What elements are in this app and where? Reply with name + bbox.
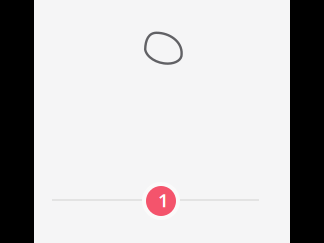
button[interactable]: Stroke width 1 [142,182,180,220]
button[interactable]: Drawing canvas [34,0,290,243]
staticText: 1 [158,188,169,212]
